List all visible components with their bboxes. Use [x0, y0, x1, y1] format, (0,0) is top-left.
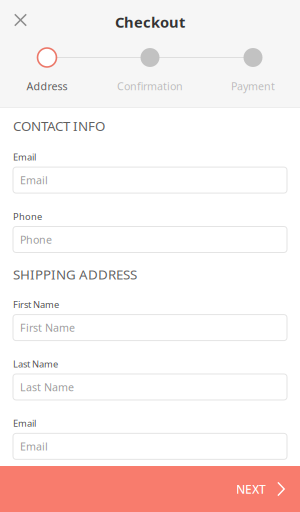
button[interactable]: NEXT — [0, 466, 300, 512]
staticText: NEXT — [236, 481, 266, 497]
button[interactable]: Email — [13, 167, 287, 193]
staticText: First Name — [13, 298, 59, 311]
staticText: Confirmation — [117, 79, 183, 93]
staticText: SHIPPING ADDRESS — [13, 265, 137, 283]
button[interactable]: Close — [0, 4, 37, 35]
button[interactable]: Last Name — [13, 374, 287, 400]
staticText: Email — [13, 151, 36, 163]
button[interactable]: Email — [13, 433, 287, 459]
staticText: Last Name — [13, 358, 58, 370]
staticText: Email — [20, 439, 48, 453]
button[interactable]: First Name — [13, 315, 287, 341]
staticText: Payment — [231, 79, 275, 93]
staticText: Address — [26, 79, 67, 93]
button[interactable]: Phone — [13, 226, 287, 252]
staticText: Phone — [20, 232, 52, 247]
staticText: Phone — [13, 210, 42, 222]
staticText: Checkout — [115, 12, 185, 32]
staticText: Email — [20, 173, 48, 187]
staticText: Last Name — [20, 380, 74, 394]
staticText: Email — [13, 417, 36, 429]
staticText: First Name — [20, 320, 75, 335]
staticText: CONTACT INFO — [13, 117, 105, 135]
